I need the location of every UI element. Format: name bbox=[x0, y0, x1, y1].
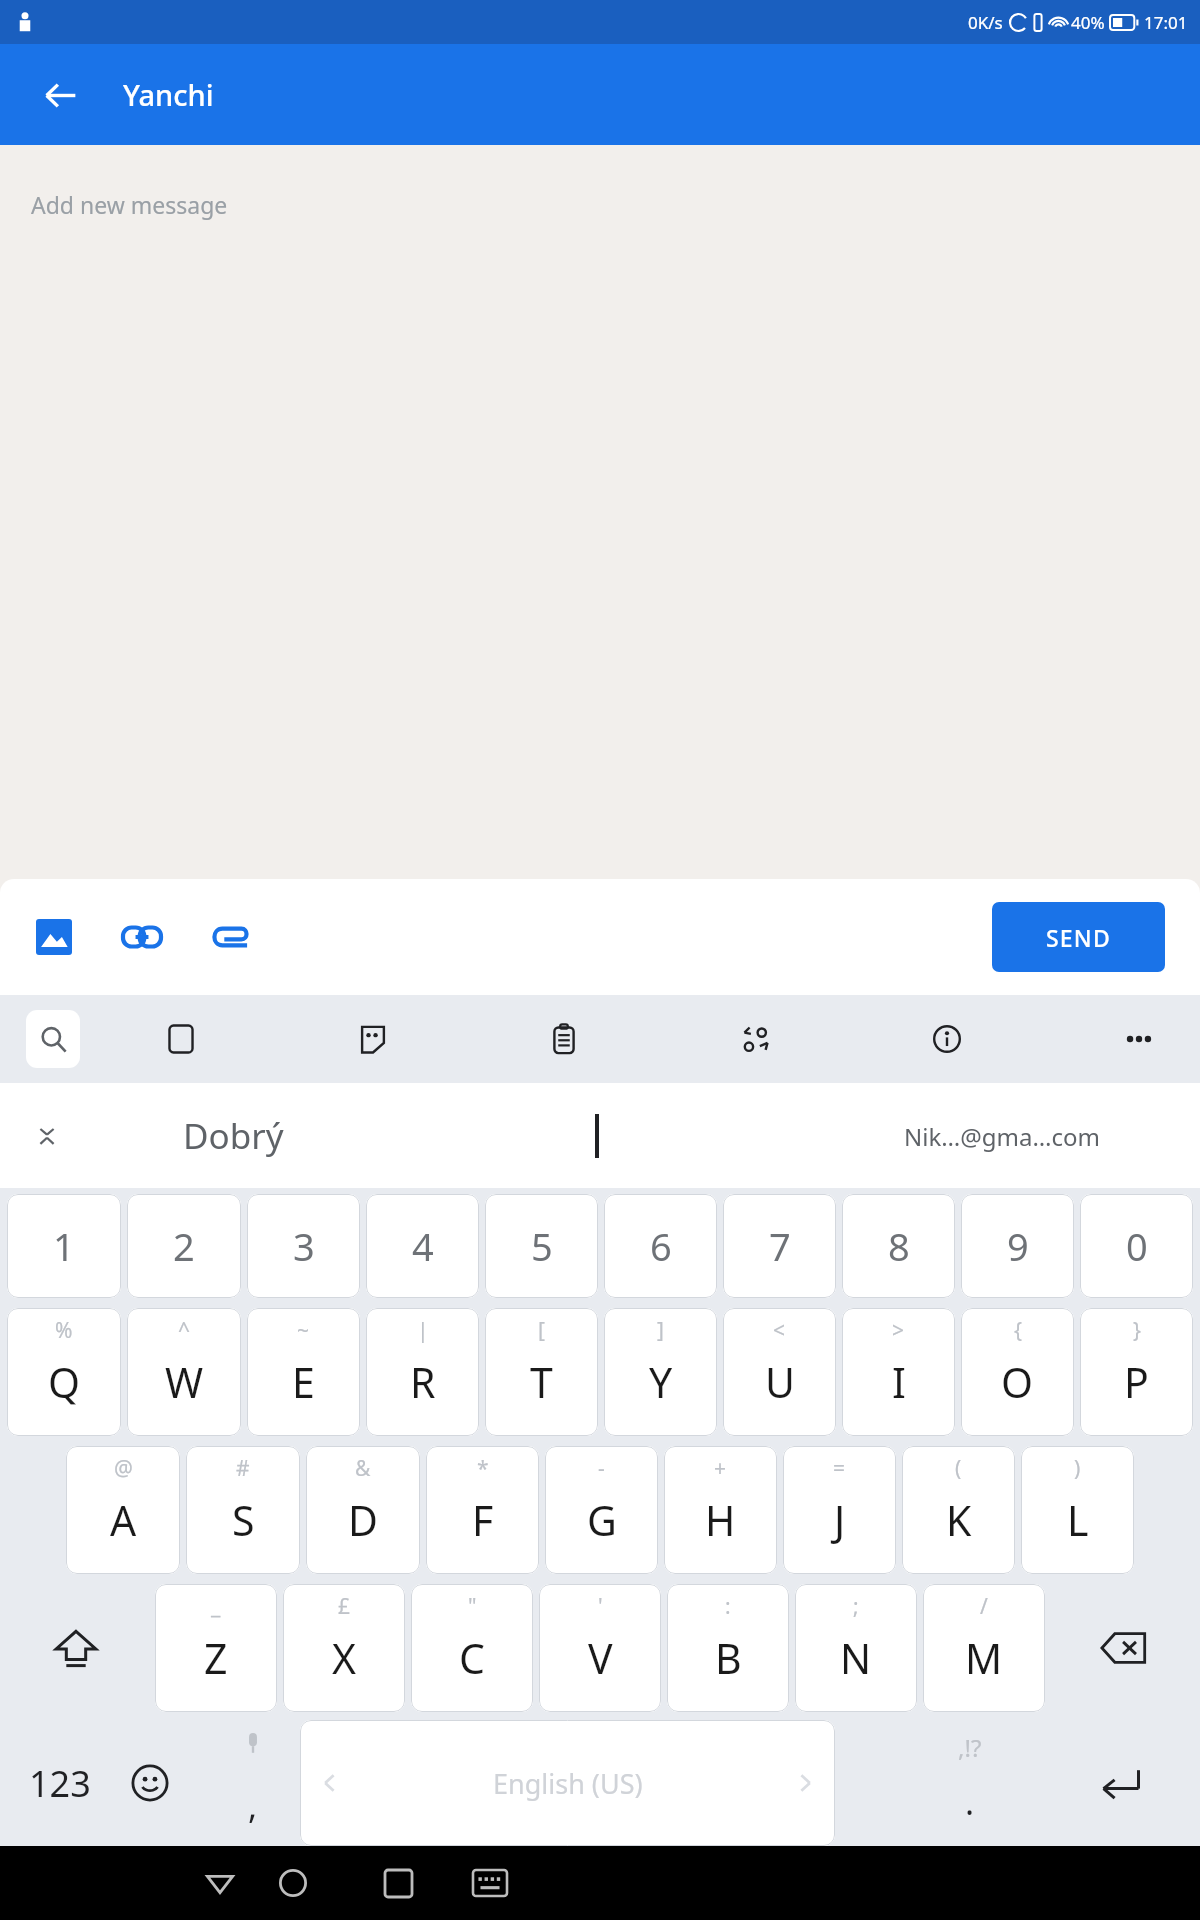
button[interactable]: Emoji bbox=[110, 1743, 190, 1823]
staticText: English (US) bbox=[493, 1765, 643, 1802]
button[interactable]: Backspace bbox=[1048, 1584, 1200, 1712]
staticText: 2 bbox=[173, 1220, 195, 1272]
button[interactable]: % bbox=[7, 1308, 121, 1436]
button[interactable]: } bbox=[1080, 1308, 1193, 1436]
staticText: K bbox=[946, 1492, 972, 1548]
staticText: ~ bbox=[297, 1316, 310, 1345]
button[interactable]: Translate bbox=[725, 1008, 787, 1070]
button[interactable]: 1 bbox=[7, 1194, 121, 1298]
button[interactable]: @ bbox=[66, 1446, 180, 1574]
button[interactable]: £ bbox=[283, 1584, 405, 1712]
button[interactable]: Shift bbox=[0, 1584, 152, 1712]
button[interactable]: | bbox=[366, 1308, 479, 1436]
staticText: = bbox=[833, 1454, 846, 1483]
button[interactable]: { bbox=[961, 1308, 1074, 1436]
button[interactable]: & bbox=[306, 1446, 420, 1574]
button[interactable]: Info bbox=[916, 1008, 978, 1070]
button[interactable]: 6 bbox=[604, 1194, 717, 1298]
button[interactable]: Hide keyboard bbox=[185, 1848, 255, 1918]
staticText: [ bbox=[538, 1316, 545, 1345]
button[interactable]: ^ bbox=[127, 1308, 241, 1436]
button[interactable]: Insert image bbox=[22, 905, 86, 969]
staticText: 17:01 bbox=[1144, 11, 1188, 34]
button[interactable]: GIF bbox=[150, 1008, 212, 1070]
button[interactable]: _ bbox=[155, 1584, 277, 1712]
staticText: B bbox=[715, 1630, 742, 1686]
staticText: ^ bbox=[178, 1316, 191, 1345]
staticText: 8 bbox=[888, 1220, 910, 1272]
staticText: G bbox=[587, 1492, 617, 1548]
button[interactable]: ~ bbox=[247, 1308, 360, 1436]
button[interactable]: ; bbox=[795, 1584, 917, 1712]
button[interactable]: Search bbox=[26, 1010, 80, 1068]
staticText: Z bbox=[204, 1630, 228, 1686]
button[interactable]: 5 bbox=[485, 1194, 598, 1298]
staticText: 0 bbox=[1126, 1220, 1148, 1272]
staticText: ] bbox=[657, 1316, 664, 1345]
button[interactable]: - bbox=[545, 1446, 658, 1574]
staticText: 3 bbox=[293, 1220, 315, 1272]
button[interactable]: " bbox=[411, 1584, 533, 1712]
button[interactable]: 9 bbox=[961, 1194, 1074, 1298]
button[interactable]: Back bbox=[26, 61, 94, 129]
button[interactable]: 4 bbox=[366, 1194, 479, 1298]
staticText: Add new message bbox=[31, 189, 228, 220]
staticText: % bbox=[55, 1316, 73, 1345]
button[interactable]: More options bbox=[1108, 1008, 1170, 1070]
staticText: W bbox=[165, 1354, 204, 1410]
button[interactable]: ] bbox=[604, 1308, 717, 1436]
button[interactable]: + bbox=[664, 1446, 777, 1574]
button[interactable]: 0 bbox=[1080, 1194, 1193, 1298]
button[interactable]: Clipboard bbox=[533, 1008, 595, 1070]
staticText: * bbox=[477, 1454, 489, 1483]
button[interactable]: Home bbox=[258, 1848, 328, 1918]
button[interactable]: Sticker bbox=[342, 1008, 404, 1070]
staticText: J bbox=[834, 1492, 846, 1548]
button[interactable]: English (US) bbox=[300, 1720, 835, 1846]
staticText: X bbox=[332, 1630, 357, 1686]
staticText: - bbox=[598, 1454, 605, 1483]
button[interactable]: < bbox=[723, 1308, 836, 1436]
button[interactable]: Recent apps bbox=[363, 1848, 433, 1918]
staticText: 40% bbox=[1071, 11, 1105, 34]
staticText: E bbox=[292, 1354, 315, 1410]
staticText: { bbox=[1014, 1316, 1022, 1345]
button[interactable]: Insert link bbox=[110, 905, 174, 969]
button[interactable]: # bbox=[186, 1446, 300, 1574]
button[interactable]: * bbox=[426, 1446, 539, 1574]
button[interactable]: Collapse suggestions bbox=[20, 1109, 74, 1163]
button[interactable]: [ bbox=[485, 1308, 598, 1436]
staticText: Nik…@gma…com bbox=[904, 1120, 1100, 1153]
button[interactable]: = bbox=[783, 1446, 896, 1574]
staticText: . bbox=[965, 1779, 975, 1825]
button[interactable]: Enter bbox=[1066, 1723, 1176, 1843]
button[interactable]: : bbox=[667, 1584, 789, 1712]
staticText: N bbox=[840, 1630, 872, 1686]
staticText: Q bbox=[48, 1354, 81, 1410]
button[interactable]: Attach file bbox=[198, 905, 262, 969]
staticText: < bbox=[773, 1316, 786, 1345]
button[interactable]: 3 bbox=[247, 1194, 360, 1298]
button[interactable]: 8 bbox=[842, 1194, 955, 1298]
staticText: 5 bbox=[531, 1220, 553, 1272]
button[interactable]: > bbox=[842, 1308, 955, 1436]
button[interactable]: SEND bbox=[992, 902, 1165, 972]
button[interactable]: ) bbox=[1021, 1446, 1134, 1574]
button[interactable]: Switch keyboard bbox=[455, 1848, 525, 1918]
staticText: F bbox=[472, 1492, 494, 1548]
button[interactable]: 2 bbox=[127, 1194, 241, 1298]
button[interactable]: 7 bbox=[723, 1194, 836, 1298]
button[interactable]: Dobrý bbox=[168, 1091, 298, 1181]
button[interactable]: ' bbox=[539, 1584, 661, 1712]
staticText: # bbox=[236, 1454, 250, 1483]
staticText: | bbox=[417, 1316, 429, 1345]
button[interactable]: 123 bbox=[14, 1728, 106, 1838]
staticText: Dobrý bbox=[183, 1112, 284, 1160]
button[interactable]: ( bbox=[902, 1446, 1015, 1574]
button[interactable]: / bbox=[923, 1584, 1045, 1712]
button[interactable]: Comma and voice input bbox=[208, 1723, 298, 1843]
button[interactable]: Period and symbols bbox=[915, 1723, 1025, 1843]
button[interactable]: Nik…@gma…com bbox=[904, 1091, 1100, 1181]
staticText: 9 bbox=[1007, 1220, 1029, 1272]
staticText: Yanchi bbox=[123, 75, 214, 114]
